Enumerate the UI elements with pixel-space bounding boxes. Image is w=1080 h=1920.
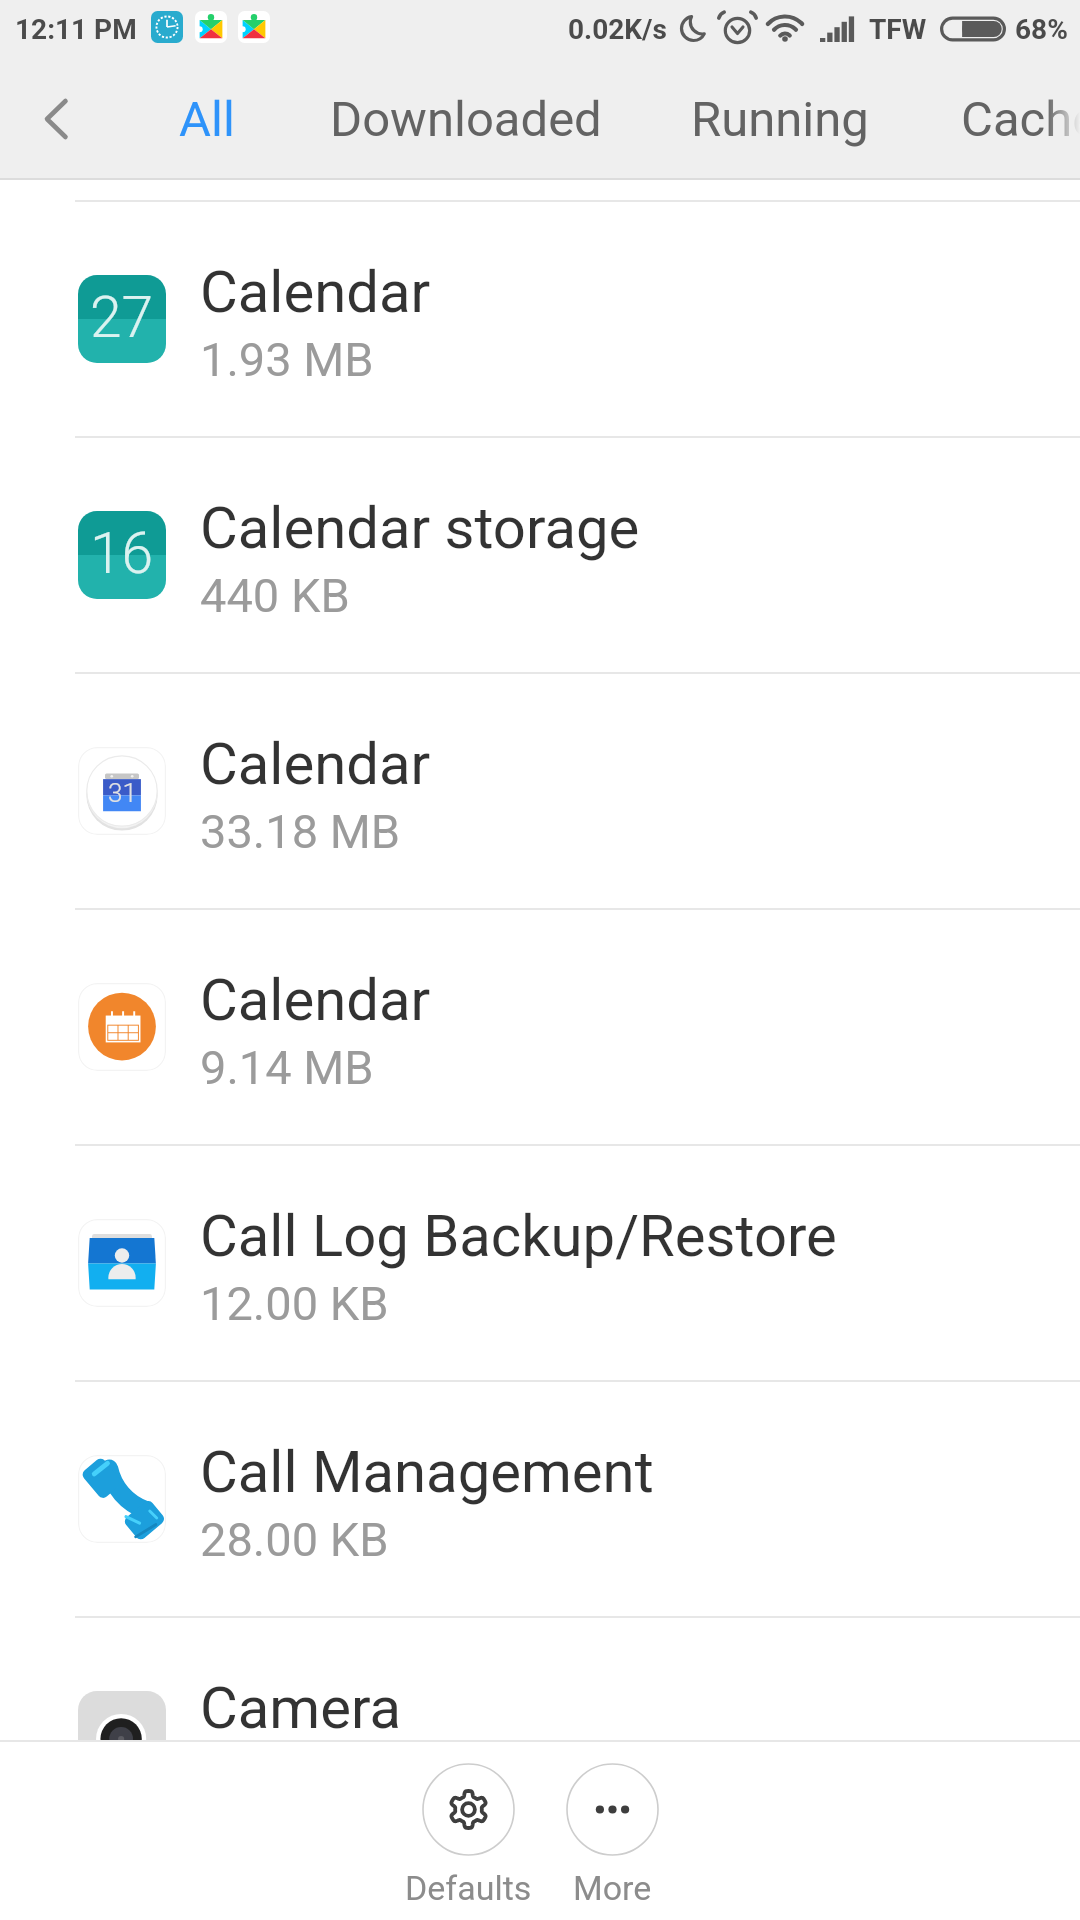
staticText: Calendar — [200, 730, 431, 798]
staticText: 33.18 MB — [200, 804, 401, 859]
staticText: 27 — [90, 284, 154, 351]
button[interactable]: Downloaded — [306, 58, 626, 180]
staticText: Call Management — [200, 1438, 654, 1506]
button[interactable]: More — [540, 1740, 684, 1920]
button[interactable]: All — [155, 58, 259, 180]
staticText: 16 — [90, 520, 154, 587]
button[interactable]: Call Log Backup/Restore — [0, 1146, 1080, 1380]
staticText: 12:11 PM — [15, 13, 137, 46]
staticText: Call Log Backup/Restore — [200, 1202, 837, 1270]
staticText: TFW — [869, 13, 927, 46]
staticText: Cached — [961, 91, 1080, 148]
button[interactable]: Back — [0, 58, 112, 180]
button[interactable]: Calendar — [0, 910, 1080, 1144]
staticText: Calendar — [200, 258, 431, 326]
staticText: 12.00 KB — [200, 1276, 389, 1331]
button[interactable]: Defaults — [396, 1740, 540, 1920]
staticText: 68% — [1015, 13, 1068, 46]
staticText: 9.14 MB — [200, 1040, 374, 1095]
button[interactable]: 16 — [0, 438, 1080, 672]
staticText: 31 — [108, 778, 137, 808]
staticText: Downloaded — [330, 91, 602, 148]
staticText: Running — [691, 91, 869, 148]
staticText: Camera — [200, 1674, 401, 1742]
button[interactable]: Camera — [0, 1618, 1080, 1852]
button[interactable]: Cached — [937, 58, 1080, 180]
staticText: All — [179, 91, 235, 148]
staticText: 28.00 KB — [200, 1512, 389, 1567]
staticText: 1.93 MB — [200, 332, 374, 387]
staticText: More — [573, 1868, 652, 1908]
staticText: Calendar storage — [200, 494, 640, 562]
staticText: Calendar — [200, 966, 431, 1034]
staticText: 440 KB — [200, 568, 350, 623]
staticText: Defaults — [405, 1868, 532, 1908]
staticText: 0.02K/s — [568, 13, 667, 46]
button[interactable]: 31 — [0, 674, 1080, 908]
button[interactable]: Call Management — [0, 1382, 1080, 1616]
button[interactable]: 27 — [0, 202, 1080, 436]
button[interactable]: Running — [667, 58, 893, 180]
